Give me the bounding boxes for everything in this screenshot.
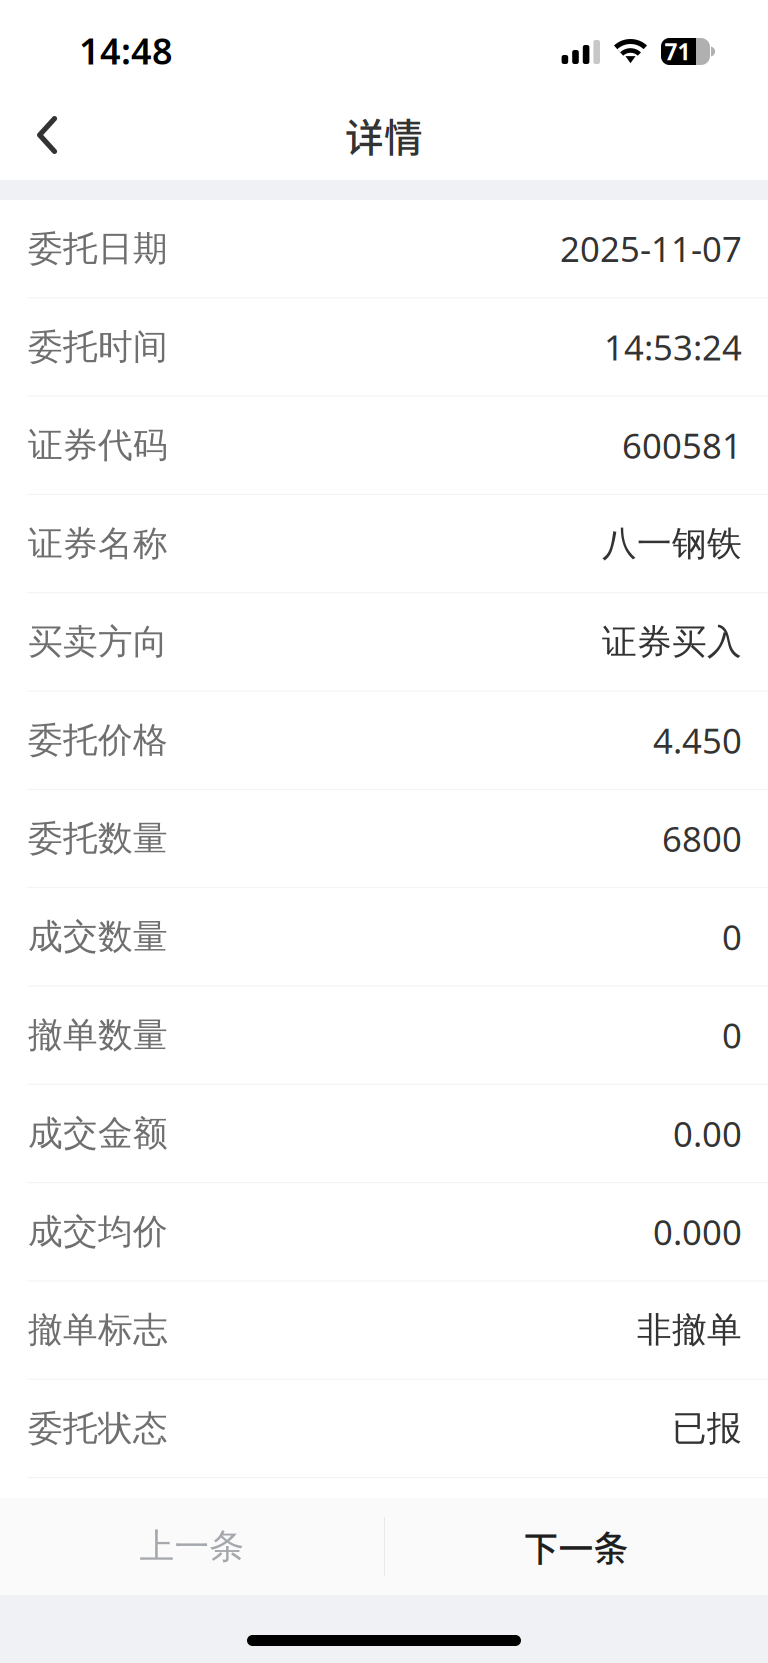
staticText: 委托价格 (28, 719, 168, 761)
staticText: 八一钢铁 (602, 522, 742, 565)
staticText: 4.450 (653, 717, 742, 763)
staticText: 0.00 (673, 1110, 742, 1156)
staticText: 0.000 (653, 1209, 742, 1255)
staticText: 非撤单 (637, 1309, 742, 1351)
staticText: 委托日期 (28, 227, 168, 270)
staticText: 71 (664, 36, 690, 66)
staticText: 下一条 (523, 1521, 628, 1572)
staticText: 委托状态 (28, 1407, 168, 1450)
staticText: 证券代码 (28, 424, 168, 467)
staticText: 6800 (662, 815, 742, 861)
button[interactable]: 上一条 (0, 1498, 384, 1595)
staticText: 撤单数量 (28, 1014, 168, 1056)
button[interactable]: 返回 (0, 90, 94, 180)
staticText: 委托时间 (28, 326, 168, 368)
staticText: 成交数量 (28, 915, 168, 958)
staticText: 委托数量 (28, 817, 168, 860)
staticText: 详情 (345, 107, 423, 163)
staticText: 0 (722, 1012, 742, 1058)
button[interactable]: 下一条 (384, 1498, 768, 1595)
staticText: 证券买入 (602, 621, 742, 663)
staticText: 14:53:24 (604, 324, 742, 370)
staticText: 成交均价 (28, 1210, 168, 1253)
staticText: 撤单标志 (28, 1309, 168, 1351)
staticText: 已报 (672, 1407, 742, 1450)
staticText: 买卖方向 (28, 621, 168, 663)
staticText: 0 (722, 914, 742, 960)
staticText: 2025-11-07 (560, 226, 742, 272)
staticText: 证券名称 (28, 522, 168, 565)
staticText: 14:48 (79, 27, 173, 74)
staticText: 成交金额 (28, 1112, 168, 1155)
staticText: 上一条 (139, 1525, 244, 1568)
staticText: 600581 (622, 422, 742, 468)
